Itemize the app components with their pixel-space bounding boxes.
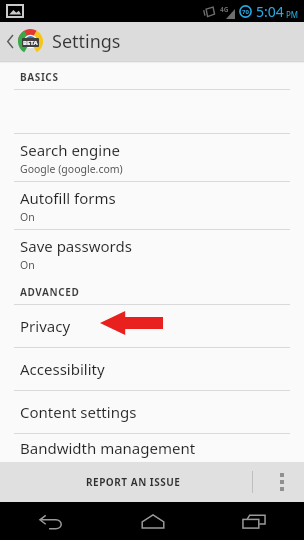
staticText: ADVANCED [20, 285, 80, 299]
staticText: 70 [242, 8, 249, 16]
staticText: Google (google.com) [20, 162, 123, 176]
button[interactable]: Back [0, 502, 102, 540]
staticText: Save passwords [20, 236, 132, 256]
staticText: 4G [220, 5, 229, 14]
staticText: BASICS [20, 70, 59, 84]
button[interactable]: Search engine [0, 134, 304, 181]
staticText: Search engine [20, 140, 120, 160]
button[interactable]: Bandwidth management [0, 434, 304, 462]
button[interactable]: Save passwords [0, 230, 304, 277]
button[interactable]: Recent apps [203, 502, 304, 540]
button[interactable]: Accessibility [0, 348, 304, 390]
button[interactable]: REPORT AN ISSUE [72, 464, 195, 500]
staticText: PM [286, 9, 299, 20]
button[interactable]: More options [260, 462, 304, 502]
staticText: On [20, 258, 35, 272]
button[interactable]: Privacy [0, 305, 304, 347]
staticText: Content settings [20, 402, 137, 422]
staticText: On [20, 210, 35, 224]
button[interactable]: Content settings [0, 391, 304, 433]
staticText: Autofill forms [20, 188, 116, 208]
button[interactable]: Home [102, 502, 203, 540]
staticText: Privacy [20, 316, 71, 336]
staticText: 5:04 [256, 2, 284, 21]
staticText: BETA [23, 39, 38, 47]
staticText: REPORT AN ISSUE [86, 475, 181, 489]
staticText: Settings [52, 29, 121, 54]
button[interactable]: Navigate up [0, 22, 45, 61]
staticText: Bandwidth management [20, 438, 196, 458]
button[interactable]: Autofill forms [0, 182, 304, 229]
staticText: Accessibility [20, 359, 105, 379]
